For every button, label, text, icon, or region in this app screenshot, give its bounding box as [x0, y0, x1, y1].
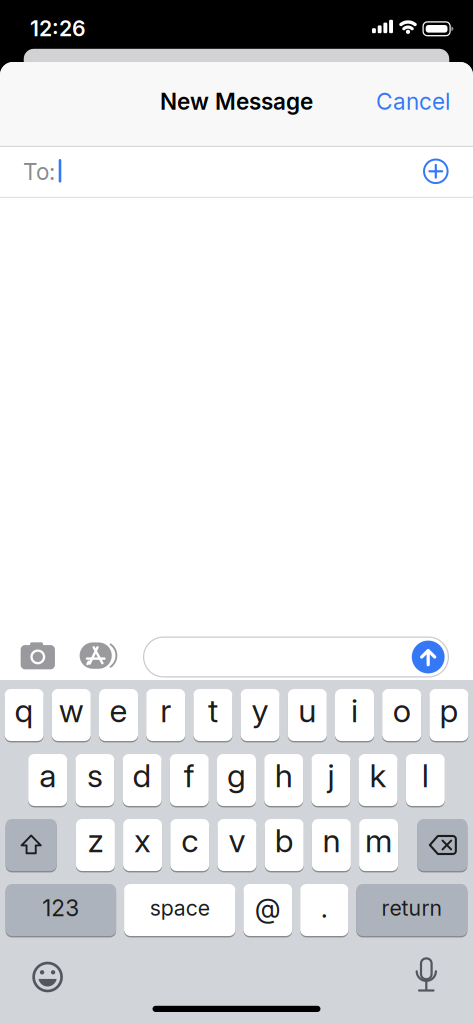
staticText: c [181, 822, 198, 859]
button[interactable]: Dictation [409, 957, 444, 995]
staticText: j [327, 757, 334, 794]
button[interactable]: j [311, 754, 350, 806]
button[interactable]: y [241, 689, 280, 741]
button[interactable]: d [123, 754, 162, 806]
button[interactable]: Send [412, 641, 445, 673]
staticText: space [150, 895, 210, 921]
button[interactable]: a [28, 754, 67, 806]
button[interactable]: Delete [417, 819, 467, 871]
button[interactable]: t [193, 689, 232, 741]
staticText: s [87, 757, 103, 794]
button[interactable]: n [312, 819, 351, 871]
button[interactable]: Emoji [29, 958, 67, 996]
button[interactable]: u [288, 689, 327, 741]
button[interactable]: Cancel [350, 76, 450, 126]
button[interactable]: o [382, 689, 421, 741]
button[interactable]: Shift [6, 819, 57, 871]
button[interactable]: h [264, 754, 303, 806]
staticText: w [59, 692, 84, 729]
staticText: 123 [42, 895, 79, 921]
staticText: New Message [160, 88, 313, 115]
button[interactable]: q [5, 689, 44, 741]
button[interactable]: . [300, 884, 348, 936]
button[interactable]: k [359, 754, 398, 806]
button[interactable]: l [406, 754, 445, 806]
staticText: @ [255, 892, 281, 924]
button[interactable]: Add Contact [414, 149, 458, 193]
staticText: i [351, 692, 358, 729]
staticText: m [365, 822, 392, 859]
staticText: l [422, 757, 429, 794]
button[interactable]: Message [143, 636, 449, 677]
staticText: f [184, 757, 195, 794]
button[interactable]: @ [243, 884, 292, 936]
staticText: To: [23, 158, 55, 185]
staticText: t [208, 692, 218, 729]
button[interactable]: 123 [6, 884, 116, 936]
button[interactable]: b [265, 819, 304, 871]
button[interactable]: z [76, 819, 115, 871]
staticText: h [275, 757, 293, 794]
staticText: o [393, 692, 411, 729]
button[interactable]: r [146, 689, 185, 741]
staticText: return [381, 895, 442, 921]
button[interactable]: x [123, 819, 162, 871]
button[interactable]: c [170, 819, 209, 871]
button[interactable]: space [124, 884, 235, 936]
button[interactable]: i [335, 689, 374, 741]
button[interactable]: Camera [15, 638, 61, 676]
staticText: d [133, 757, 152, 794]
staticText: b [275, 822, 294, 859]
button[interactable]: g [217, 754, 256, 806]
staticText: x [134, 822, 151, 859]
staticText: v [228, 822, 245, 859]
button[interactable]: w [52, 689, 91, 741]
button[interactable]: return [356, 884, 467, 936]
button[interactable]: e [99, 689, 138, 741]
staticText: p [439, 692, 458, 729]
staticText: 12:26 [30, 16, 86, 41]
button[interactable]: m [359, 819, 398, 871]
button[interactable]: p [429, 689, 468, 741]
staticText: r [160, 692, 171, 729]
staticText: g [227, 757, 246, 794]
staticText: q [15, 692, 34, 729]
button[interactable]: Apps [81, 633, 121, 678]
staticText: n [322, 822, 340, 859]
staticText: . [321, 892, 328, 924]
button[interactable]: v [217, 819, 256, 871]
staticText: Cancel [376, 88, 450, 115]
staticText: z [87, 822, 103, 859]
staticText: k [370, 757, 387, 794]
button[interactable]: s [75, 754, 114, 806]
staticText: y [252, 692, 269, 729]
staticText: a [39, 757, 56, 794]
staticText: e [109, 692, 127, 729]
button[interactable]: To [0, 146, 380, 197]
button[interactable]: f [170, 754, 209, 806]
staticText: u [298, 692, 316, 729]
